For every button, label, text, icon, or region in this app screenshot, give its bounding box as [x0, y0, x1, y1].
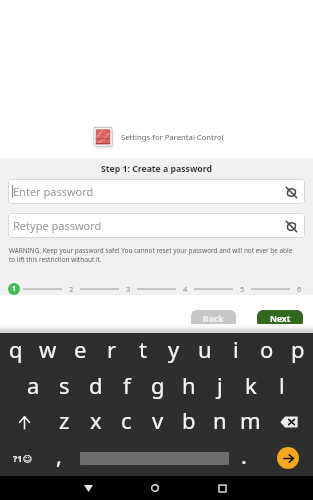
- button[interactable]: f: [111, 369, 142, 400]
- staticText: f: [123, 370, 131, 400]
- button[interactable]: v: [142, 404, 173, 435]
- staticText: Next: [270, 313, 291, 325]
- button[interactable]: 1: [8, 283, 20, 295]
- button[interactable]: j: [204, 369, 235, 400]
- button[interactable]: h: [173, 369, 204, 400]
- button[interactable]: Enter password: [8, 179, 305, 204]
- staticText: ,: [56, 440, 62, 470]
- button[interactable]: r: [96, 333, 127, 364]
- staticText: q: [9, 334, 23, 364]
- button[interactable]: s: [49, 369, 80, 400]
- button[interactable]: 4: [179, 283, 191, 295]
- button[interactable]: Show password: [285, 220, 298, 233]
- button[interactable]: ,: [44, 437, 74, 468]
- staticText: Back: [203, 313, 224, 325]
- staticText: m: [240, 405, 261, 435]
- staticText: z: [59, 405, 70, 435]
- staticText: 2: [69, 284, 74, 294]
- button[interactable]: Back: [191, 310, 236, 328]
- staticText: d: [89, 370, 103, 400]
- button[interactable]: d: [80, 369, 111, 400]
- button[interactable]: x: [80, 404, 111, 435]
- button[interactable]: Backspace: [266, 404, 313, 435]
- button[interactable]: g: [142, 369, 173, 400]
- button[interactable]: 2: [65, 283, 77, 295]
- staticText: x: [90, 405, 102, 435]
- button[interactable]: 3: [122, 283, 134, 295]
- button[interactable]: n: [204, 404, 235, 435]
- staticText: v: [152, 405, 164, 435]
- staticText: p: [291, 334, 305, 364]
- staticText: t: [139, 334, 147, 364]
- button[interactable]: q: [0, 333, 32, 364]
- staticText: j: [217, 370, 223, 400]
- button[interactable]: Symbols: [0, 437, 44, 468]
- button[interactable]: u: [189, 333, 220, 364]
- button[interactable]: t: [127, 333, 158, 364]
- staticText: 1: [12, 284, 17, 294]
- button[interactable]: 5: [236, 283, 248, 295]
- staticText: s: [59, 370, 70, 400]
- button[interactable]: Next: [257, 310, 303, 328]
- button[interactable]: Home: [143, 476, 167, 500]
- staticText: l: [279, 370, 285, 400]
- staticText: c: [121, 405, 132, 435]
- staticText: y: [168, 334, 180, 364]
- staticText: Step 1: Create a password: [101, 163, 212, 175]
- button[interactable]: i: [220, 333, 251, 364]
- staticText: 5: [240, 284, 245, 294]
- button[interactable]: l: [266, 369, 297, 400]
- button[interactable]: Show password: [285, 186, 298, 199]
- button[interactable]: k: [235, 369, 266, 400]
- staticText: b: [182, 405, 196, 435]
- button[interactable]: c: [111, 404, 142, 435]
- button[interactable]: Shift: [0, 404, 48, 435]
- staticText: g: [151, 370, 165, 400]
- staticText: ?1☺: [13, 452, 32, 464]
- staticText: u: [198, 334, 212, 364]
- staticText: r: [107, 334, 117, 364]
- button[interactable]: a: [17, 369, 49, 400]
- button[interactable]: y: [158, 333, 189, 364]
- button[interactable]: Retype password: [8, 213, 305, 238]
- staticText: Enter password: [13, 184, 94, 199]
- button[interactable]: Enter: [259, 437, 313, 468]
- staticText: WARNING: Keep your password safe! You ca…: [9, 246, 298, 264]
- button[interactable]: Space: [74, 437, 229, 468]
- button[interactable]: o: [251, 333, 282, 364]
- button[interactable]: e: [64, 333, 96, 364]
- staticText: n: [213, 405, 227, 435]
- button[interactable]: Recents: [210, 476, 234, 500]
- button[interactable]: b: [173, 404, 204, 435]
- staticText: 6: [297, 284, 302, 294]
- staticText: e: [74, 334, 87, 364]
- staticText: o: [260, 334, 274, 364]
- button[interactable]: z: [48, 404, 80, 435]
- button[interactable]: .: [229, 437, 259, 468]
- staticText: 4: [183, 284, 188, 294]
- staticText: h: [182, 370, 196, 400]
- staticText: Retype password: [13, 218, 102, 233]
- staticText: 3: [126, 284, 131, 294]
- button[interactable]: m: [235, 404, 266, 435]
- staticText: k: [245, 370, 257, 400]
- staticText: a: [27, 370, 40, 400]
- button[interactable]: p: [282, 333, 313, 364]
- button[interactable]: w: [32, 333, 64, 364]
- staticText: w: [39, 334, 57, 364]
- staticText: i: [233, 334, 239, 364]
- button[interactable]: 6: [293, 283, 305, 295]
- staticText: Settings for Parental Control: [121, 132, 224, 142]
- staticText: .: [241, 440, 247, 470]
- button[interactable]: Back: [76, 476, 100, 500]
